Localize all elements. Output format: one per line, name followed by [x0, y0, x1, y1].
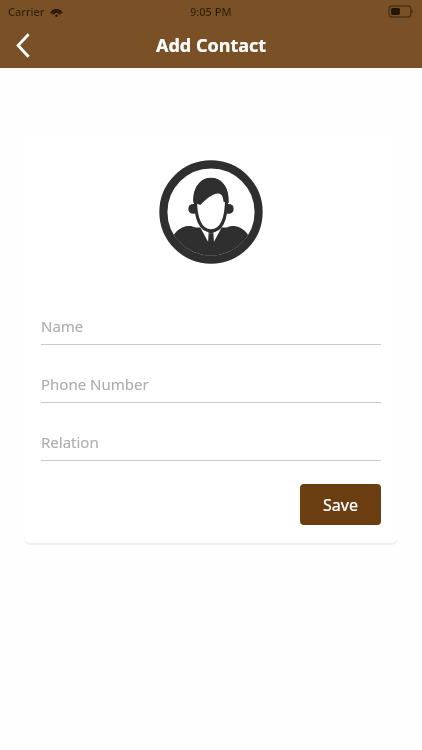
staticText: Carrier: [8, 4, 45, 19]
button[interactable]: Save: [300, 484, 381, 525]
staticText: Relation: [41, 432, 99, 452]
button[interactable]: Phone Number: [41, 374, 381, 403]
button[interactable]: Back: [0, 22, 46, 68]
staticText: Name: [41, 316, 84, 336]
button[interactable]: Name: [41, 316, 381, 345]
button[interactable]: Relation: [41, 432, 381, 461]
staticText: Save: [323, 494, 358, 516]
staticText: Phone Number: [41, 374, 149, 394]
staticText: Add Contact: [156, 33, 267, 58]
staticText: 9:05 PM: [190, 4, 232, 19]
